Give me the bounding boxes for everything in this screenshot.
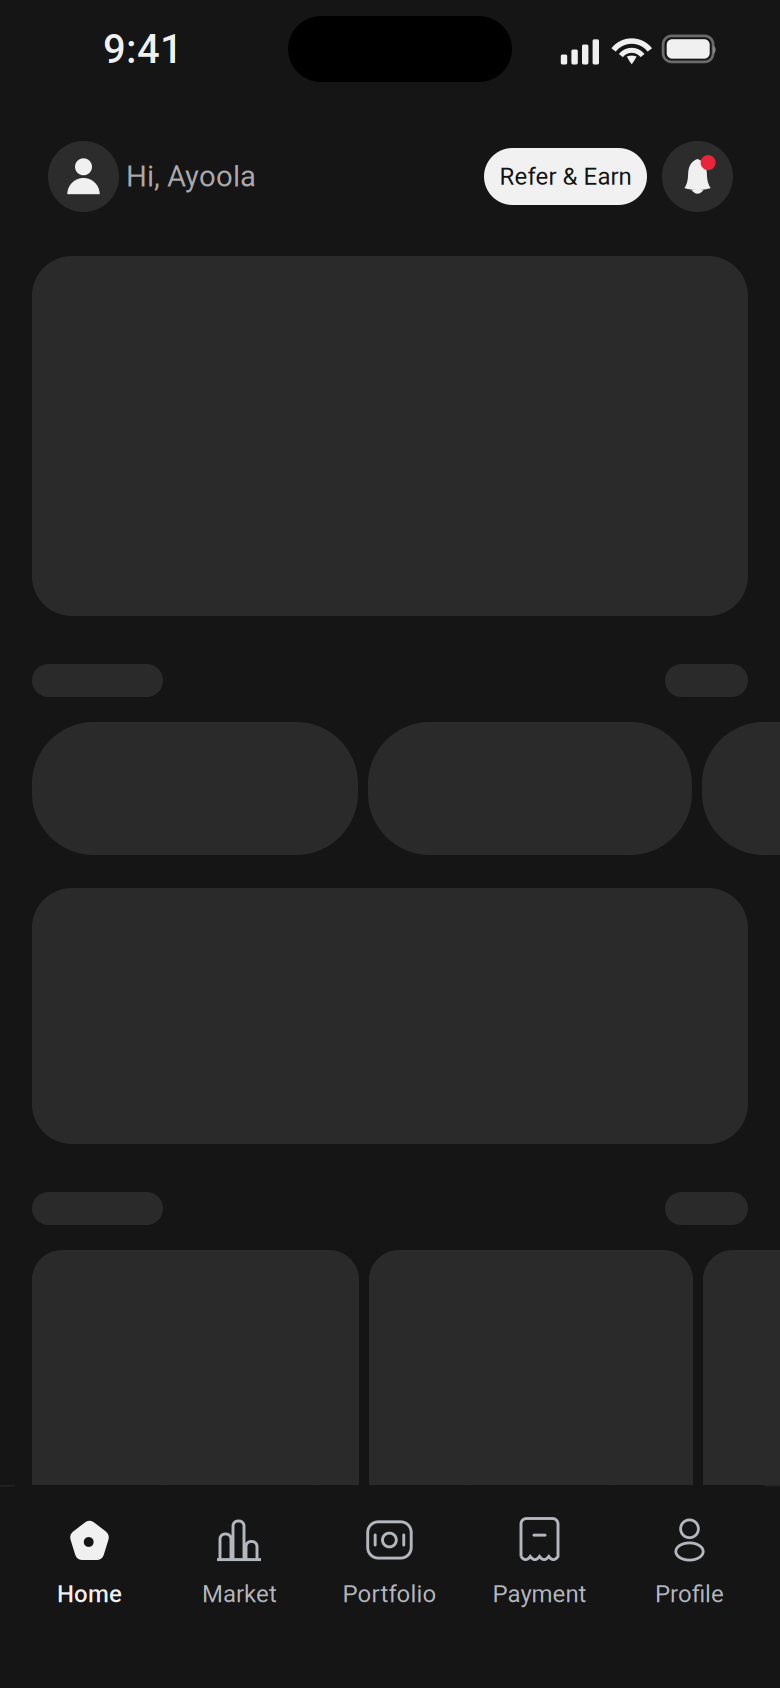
button[interactable]: Payment [464,1485,614,1688]
button[interactable]: Notifications [662,141,733,212]
staticText: Hi, Ayoola [126,159,256,194]
button[interactable]: Refer & Earn [484,148,647,205]
button[interactable]: Hi, Ayoola [48,141,256,212]
button[interactable]: Profile [614,1485,764,1688]
staticText: Profile [655,1580,724,1608]
button[interactable]: Market [164,1485,314,1688]
staticText: Market [202,1580,277,1608]
staticText: 9:41 [103,26,183,73]
staticText: Home [57,1580,122,1608]
button[interactable]: Portfolio [314,1485,464,1688]
button[interactable]: Home [14,1485,164,1688]
staticText: Payment [492,1580,586,1608]
staticText: Portfolio [342,1580,436,1608]
staticText: Refer & Earn [499,162,631,190]
